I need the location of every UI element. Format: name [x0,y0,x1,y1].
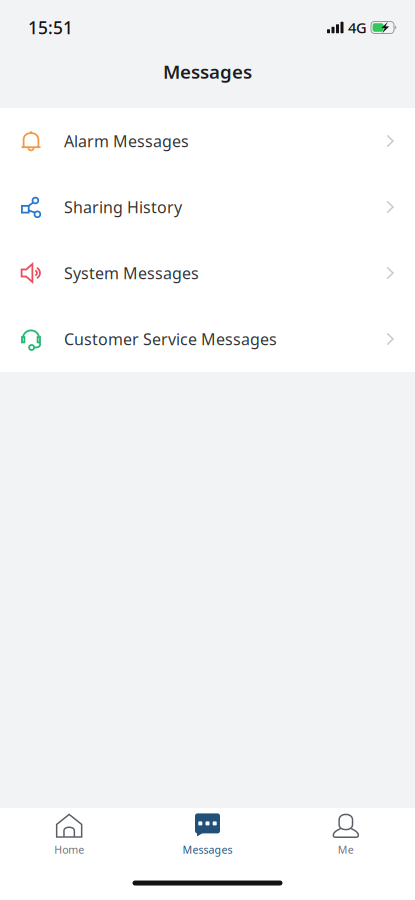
staticText: Messages [163,59,252,84]
button[interactable]: Me [277,811,415,859]
staticText: Customer Service Messages [64,328,277,350]
button[interactable]: Home [0,811,138,859]
button[interactable]: Customer Service Messages [0,306,415,372]
staticText: Me [338,842,354,857]
staticText: Messages [182,842,232,857]
button[interactable]: Messages [138,811,277,859]
staticText: Alarm Messages [64,130,189,152]
staticText: Home [54,842,84,857]
button[interactable]: System Messages [0,240,415,306]
button[interactable]: Sharing History [0,174,415,240]
button[interactable]: Alarm Messages [0,108,415,174]
staticText: Sharing History [64,196,182,218]
staticText: System Messages [64,262,199,284]
staticText: 15:51 [28,16,73,39]
staticText: 4G [348,18,367,37]
